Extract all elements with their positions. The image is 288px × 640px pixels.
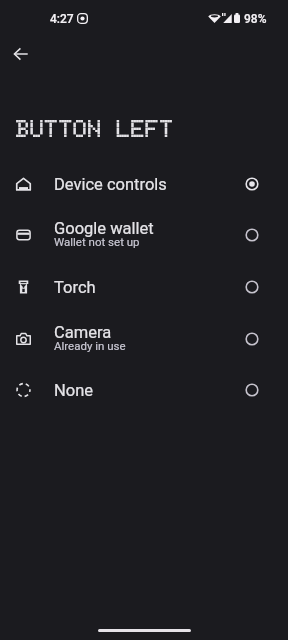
staticText: Camera: [54, 323, 112, 342]
button[interactable]: Google wallet: [0, 209, 288, 265]
button[interactable]: Device controls: [0, 161, 288, 209]
staticText: 98%: [244, 12, 267, 26]
staticText: Already in use: [54, 339, 126, 352]
staticText: BUTTON LEFT: [16, 114, 175, 143]
staticText: Torch: [54, 278, 96, 297]
staticText: None: [54, 381, 94, 400]
staticText: Google wallet: [54, 219, 154, 238]
button[interactable]: Back: [0, 33, 41, 74]
staticText: 4:27: [50, 12, 74, 26]
staticText: Device controls: [54, 175, 167, 194]
button[interactable]: None: [0, 369, 288, 417]
staticText: Wallet not set up: [54, 235, 140, 248]
button[interactable]: Torch: [0, 265, 288, 313]
button[interactable]: Camera: [0, 313, 288, 369]
